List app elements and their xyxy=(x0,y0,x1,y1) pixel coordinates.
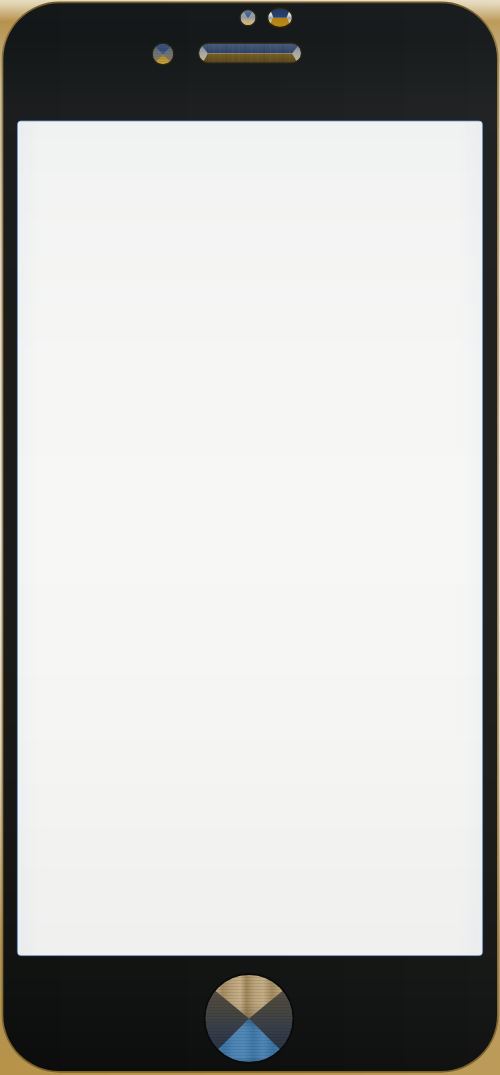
button[interactable]: Smartphone device mockup xyxy=(0,0,500,1075)
